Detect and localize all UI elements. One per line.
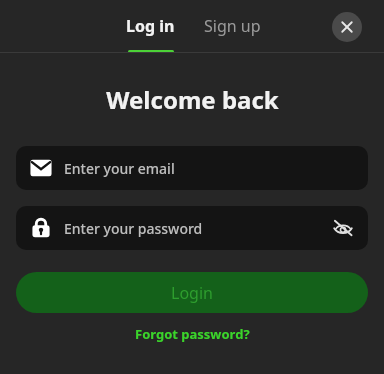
staticText: Welcome back	[106, 83, 279, 116]
staticText: Enter your password	[64, 219, 203, 238]
staticText: Forgot password?	[135, 325, 250, 343]
button[interactable]: Close	[332, 12, 362, 42]
button[interactable]: Forgot password?	[127, 322, 258, 346]
staticText: Sign up	[204, 15, 261, 37]
staticText: Login	[171, 282, 213, 304]
button[interactable]: Login	[16, 272, 368, 313]
button[interactable]: Sign up	[192, 0, 272, 53]
button[interactable]: Enter your email	[16, 146, 368, 190]
button[interactable]: Log in	[118, 0, 182, 53]
button[interactable]: Enter your password	[16, 206, 368, 250]
button[interactable]: Show password	[328, 213, 358, 243]
staticText: Log in	[126, 15, 175, 37]
staticText: Enter your email	[64, 159, 175, 178]
